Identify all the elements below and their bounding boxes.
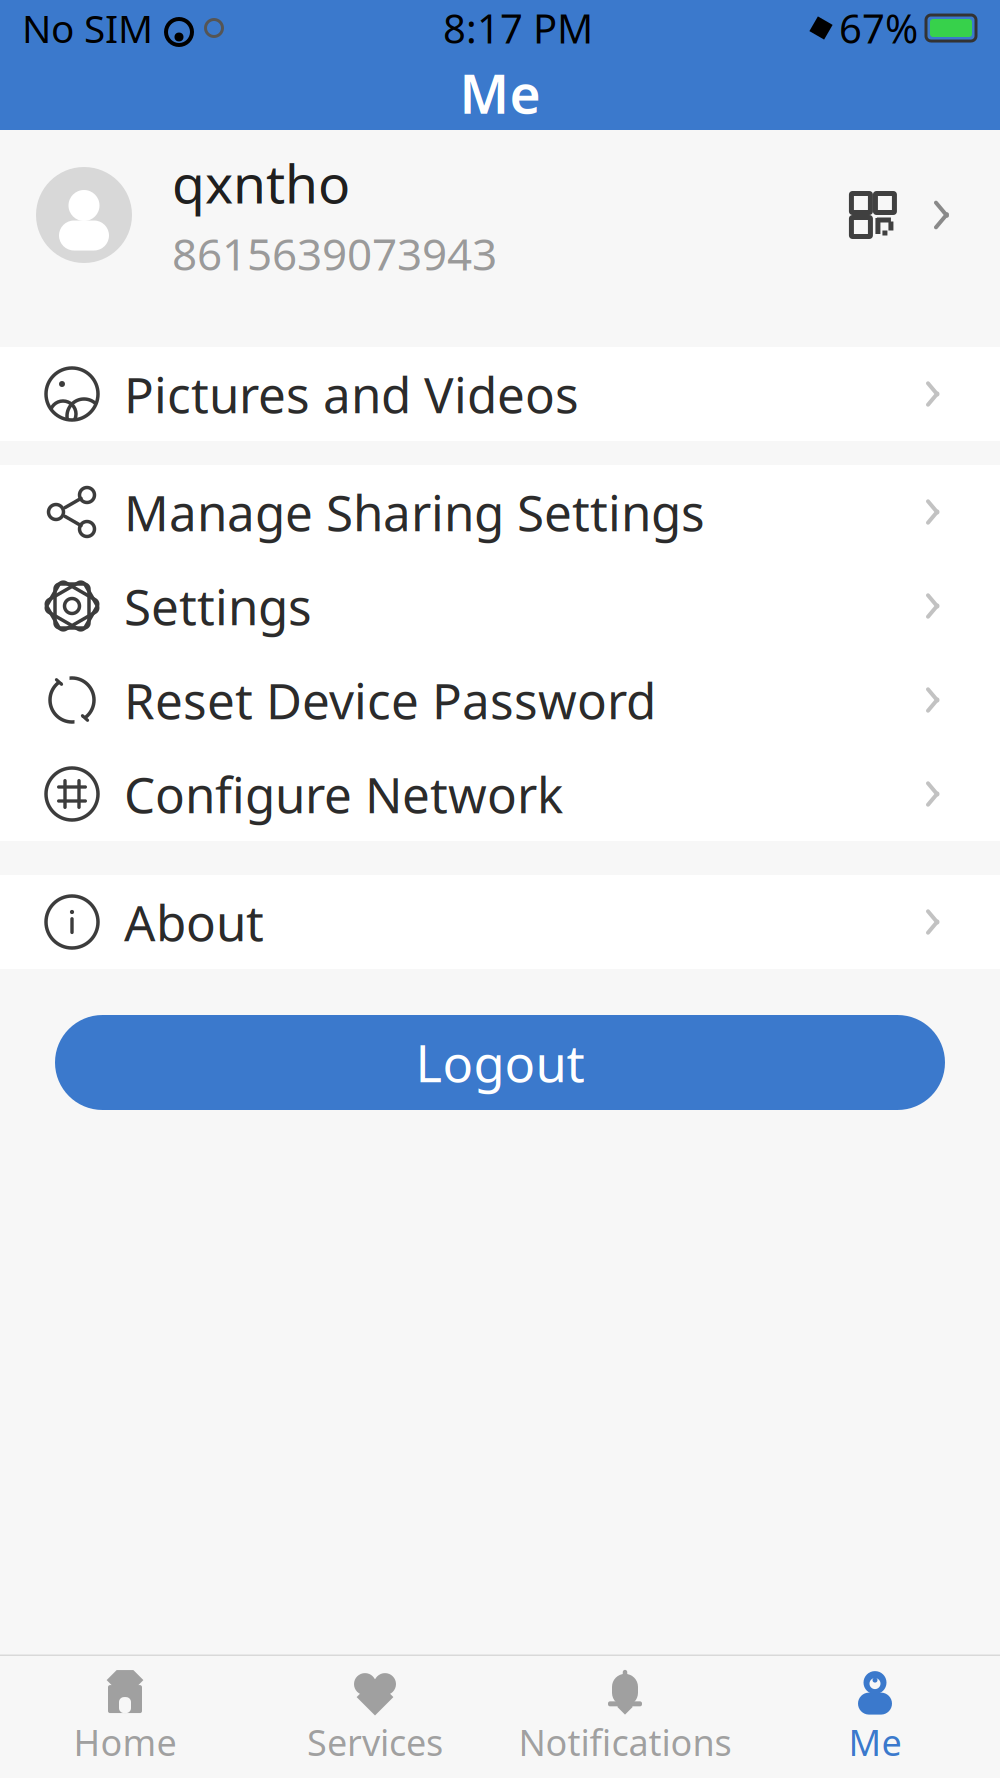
staticText: Configure Network [124, 761, 563, 827]
button[interactable]: Me [750, 1662, 1000, 1772]
button[interactable]: qxntho [0, 130, 1000, 300]
button[interactable]: Notifications [500, 1662, 750, 1772]
staticText: 8:17 PM [443, 1, 593, 54]
staticText: Manage Sharing Settings [124, 479, 705, 545]
staticText: 8615639073943 [172, 224, 497, 283]
button[interactable]: Configure Network [0, 747, 1000, 841]
staticText: Me [848, 1718, 901, 1766]
button[interactable]: Manage Sharing Settings [0, 465, 1000, 559]
staticText: Logout [415, 1029, 584, 1096]
button[interactable]: Pictures and Videos [0, 347, 1000, 441]
button[interactable]: Home [0, 1662, 250, 1772]
staticText: qxntho [172, 147, 350, 218]
staticText: No SIM [22, 2, 153, 54]
staticText: Notifications [518, 1718, 731, 1766]
staticText: Pictures and Videos [124, 361, 579, 427]
staticText: Services [307, 1718, 443, 1766]
staticText: About [124, 889, 264, 955]
button[interactable]: About [0, 875, 1000, 969]
staticText: Home [73, 1718, 176, 1766]
button[interactable]: Reset Device Password [0, 653, 1000, 747]
button[interactable]: Logout [55, 1015, 945, 1110]
staticText: Reset Device Password [124, 667, 656, 733]
staticText: 67% [839, 1, 918, 54]
button[interactable]: Services [250, 1662, 500, 1772]
button[interactable]: Settings [0, 559, 1000, 653]
staticText: Me [459, 58, 540, 128]
staticText: Settings [124, 573, 312, 639]
